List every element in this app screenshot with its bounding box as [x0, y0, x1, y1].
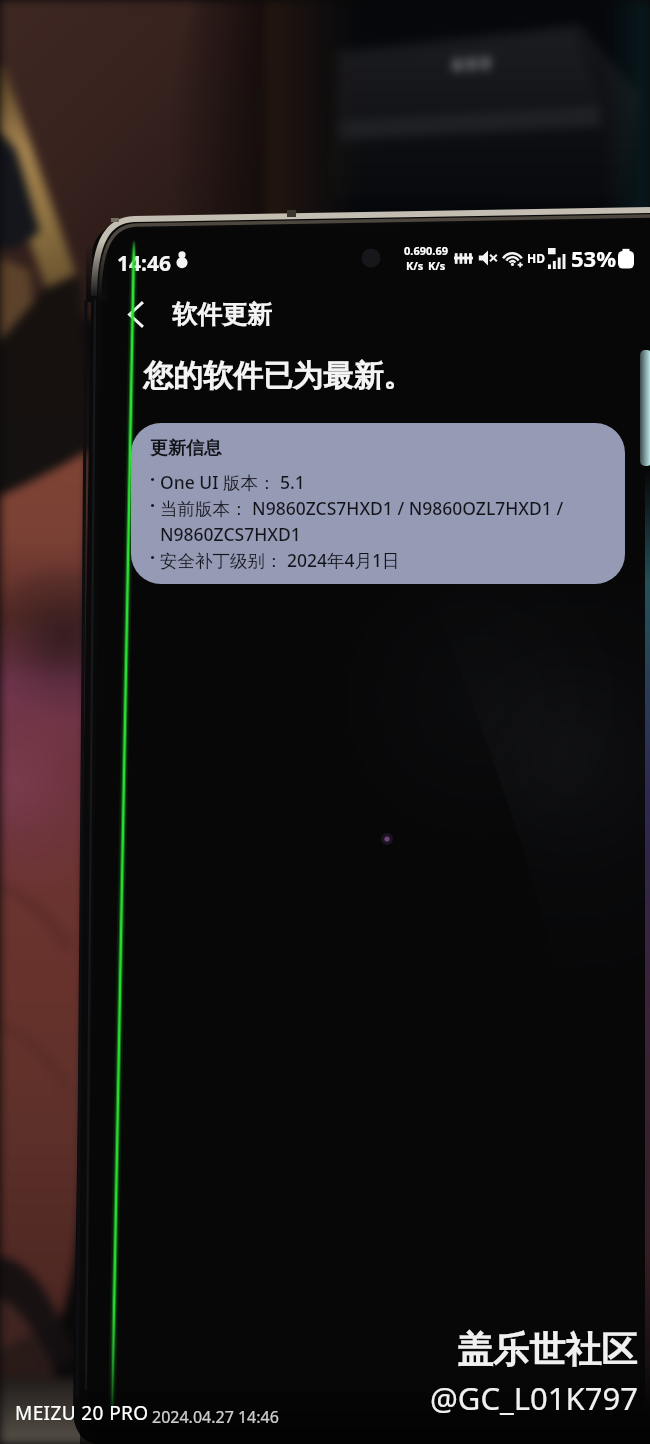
staticText: 更新信息 — [150, 437, 222, 460]
staticText: 软件更新 — [172, 299, 272, 330]
staticText: K/s — [428, 258, 446, 273]
staticText: MEIZU 20 PRO — [15, 1400, 149, 1426]
staticText: 2024.04.27 14:46 — [152, 1406, 279, 1428]
staticText: One UI 版本： 5.1 — [160, 470, 305, 494]
staticText: · — [150, 493, 156, 518]
staticText: 0.69 — [404, 243, 426, 258]
staticText: 53% — [571, 243, 617, 273]
staticText: 盖乐世社区 — [457, 1327, 637, 1372]
button[interactable]: 更新信息 — [131, 423, 625, 584]
staticText: 14:46 — [117, 249, 171, 278]
button[interactable]: 返回 — [112, 290, 160, 338]
staticText: HD — [527, 250, 545, 266]
staticText: @GC_L01K797 — [430, 1377, 638, 1419]
staticText: 当前版本： N9860ZCS7HXD1 / N9860OZL7HXD1 / N9… — [160, 496, 615, 547]
staticText: 您的软件已为最新。 — [143, 357, 413, 395]
staticText: 安全补丁级别： 2024年4月1日 — [160, 548, 400, 572]
staticText: · — [150, 467, 156, 492]
staticText: K/s — [406, 258, 424, 273]
staticText: 0.69 — [426, 243, 448, 258]
staticText: · — [150, 545, 156, 570]
